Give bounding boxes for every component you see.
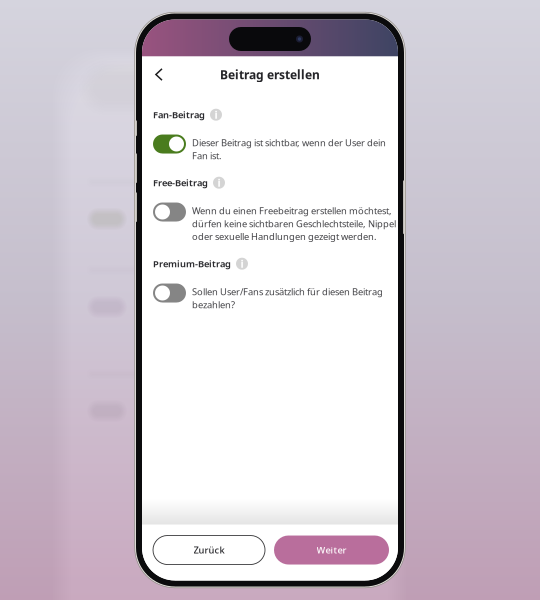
staticText: Fan-Beitrag [153, 108, 205, 121]
staticText: Beitrag erstellen [220, 66, 320, 82]
staticText: Weiter [316, 544, 346, 556]
staticText: Wenn du einen Freebeitrag erstellen möch… [192, 204, 396, 243]
staticText: i [240, 257, 243, 271]
staticText: i [217, 176, 220, 190]
button[interactable]: Fan-Beitrag [153, 134, 186, 153]
button[interactable]: Back [142, 59, 173, 90]
button[interactable]: Weiter [274, 535, 389, 564]
staticText: Dieser Beitrag ist sichtbar, wenn der Us… [192, 136, 386, 162]
button[interactable]: Premium-Beitrag [153, 283, 186, 302]
staticText: Premium-Beitrag [153, 257, 231, 270]
staticText: Free-Beitrag [153, 176, 208, 189]
staticText: Zurück [193, 544, 224, 556]
staticText: i [214, 108, 217, 122]
button[interactable]: Free-Beitrag [153, 202, 186, 221]
staticText: Sollen User/Fans zusätzlich für diesen B… [192, 285, 383, 311]
button[interactable]: Zurück [153, 535, 265, 564]
